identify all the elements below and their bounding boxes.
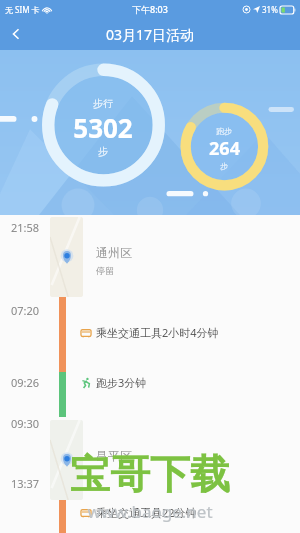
staticText: 03月17日活动 xyxy=(106,25,195,44)
button[interactable]: Map xyxy=(50,420,83,500)
button[interactable]: Back xyxy=(0,18,32,50)
staticText: 通州区 xyxy=(96,245,132,260)
staticText: 13:37 xyxy=(11,476,51,491)
button[interactable]: 乘坐交通工具2小时4分钟 xyxy=(80,325,295,340)
button[interactable]: Map xyxy=(50,217,83,297)
staticText: 07:20 xyxy=(11,303,51,318)
button[interactable]: 跑步3分钟 xyxy=(80,375,295,390)
staticText: 跑步3分钟 xyxy=(96,375,147,390)
staticText: 09:26 xyxy=(11,375,51,390)
staticText: 09:30 xyxy=(11,416,51,431)
button[interactable]: 通州区 xyxy=(96,245,286,276)
staticText: 步 xyxy=(98,145,108,158)
staticText: 无 SIM 卡 xyxy=(5,4,40,15)
staticText: 31% xyxy=(262,4,278,15)
staticText: 跑步 xyxy=(216,126,232,136)
staticText: 下午8:03 xyxy=(132,3,168,15)
staticText: 昌平区 xyxy=(96,448,132,463)
staticText: www.baoge.net xyxy=(87,500,213,523)
staticText: 乘坐交通工具2小时4分钟 xyxy=(96,325,219,340)
staticText: 264 xyxy=(209,136,240,161)
button[interactable]: 乘坐交通工具22分钟 xyxy=(80,505,295,520)
staticText: 停留 xyxy=(96,265,114,276)
staticText: 宝哥下载 xyxy=(70,449,230,499)
staticText: 步行 xyxy=(93,97,113,110)
staticText: 21:58 xyxy=(11,220,51,235)
staticText: 5302 xyxy=(73,110,133,145)
button[interactable]: 昌平区 xyxy=(96,448,286,463)
staticText: 乘坐交通工具22分钟 xyxy=(96,505,197,520)
staticText: 步 xyxy=(220,161,228,171)
